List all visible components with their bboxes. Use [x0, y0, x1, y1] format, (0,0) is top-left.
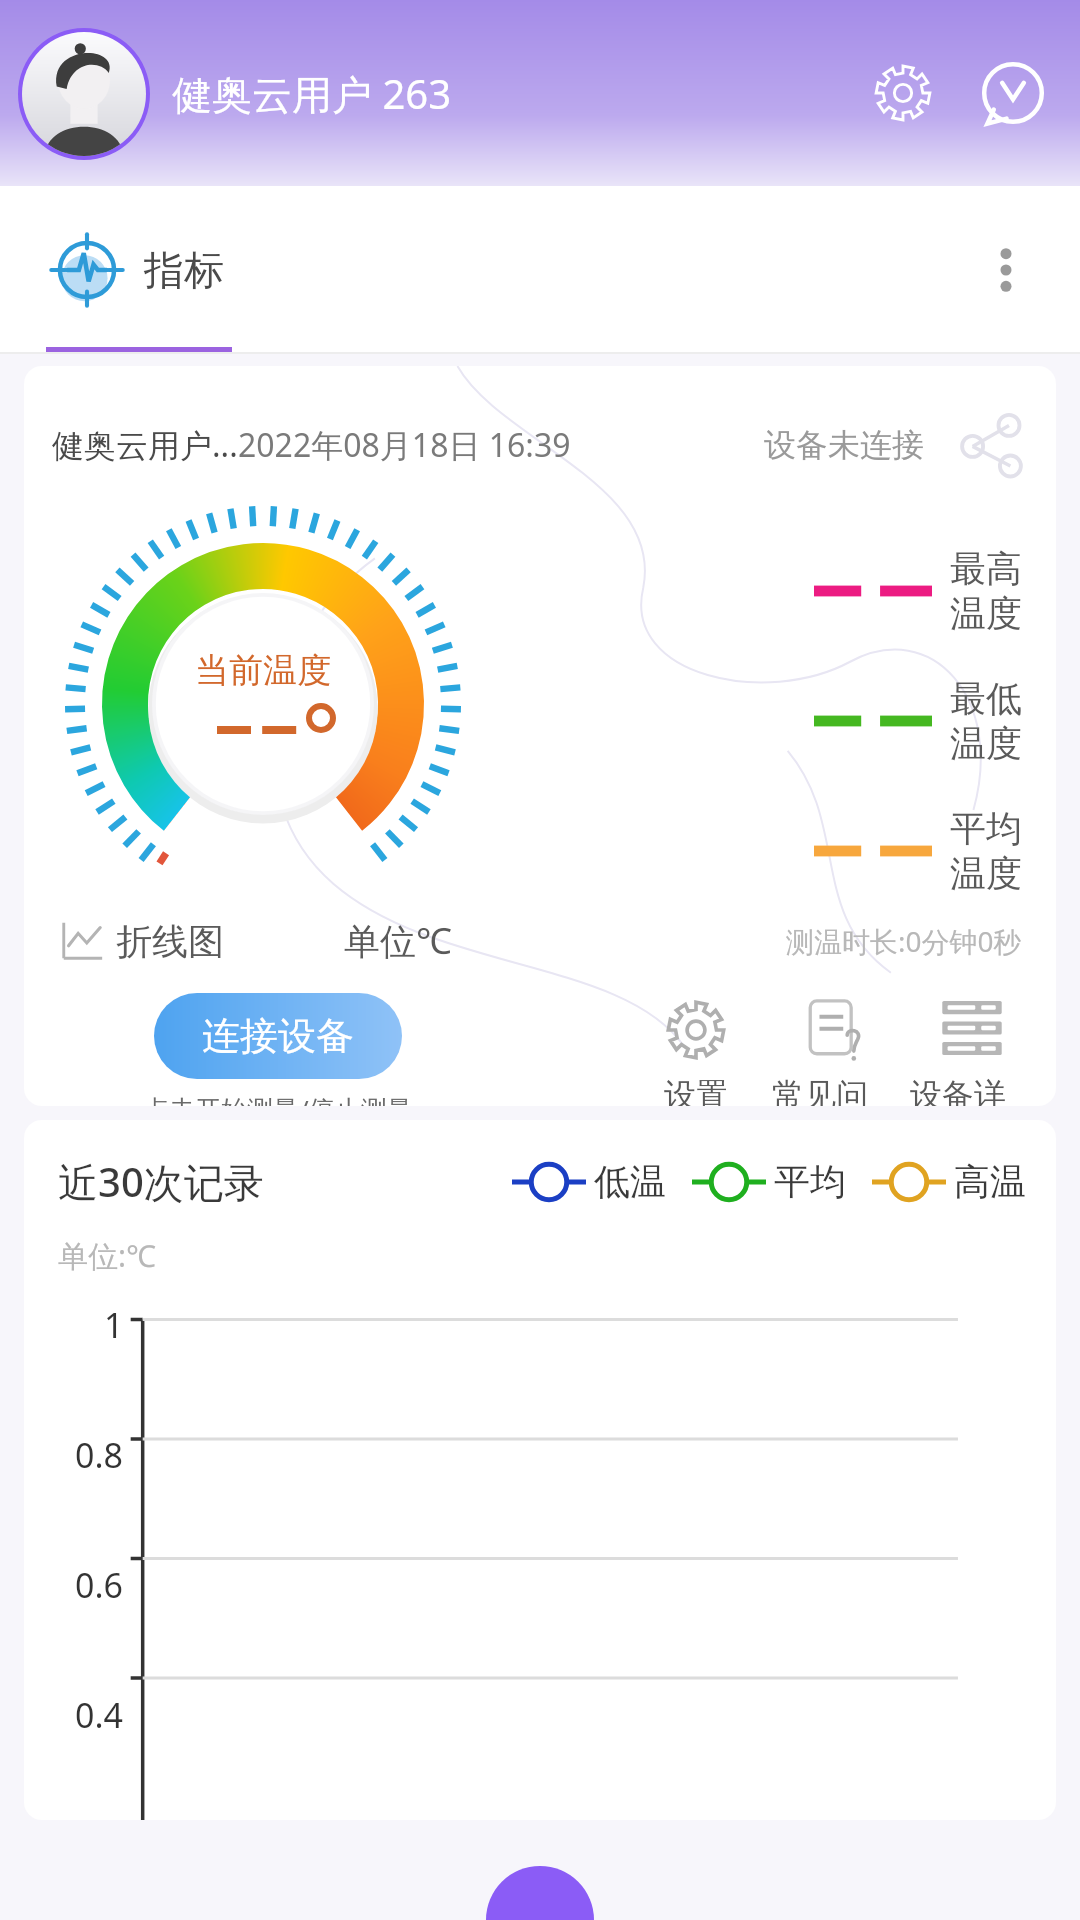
staticText: 健奥云用户...: [52, 423, 238, 467]
staticText: 点击开始测量/停止测量: [143, 1091, 413, 1106]
staticText: 健奥云用户 263: [172, 66, 452, 121]
staticText: 0.8: [75, 1432, 124, 1476]
staticText: 当前温度: [195, 649, 331, 692]
staticText: 设备详情: [910, 1075, 1034, 1106]
staticText: 高温: [954, 1159, 1026, 1204]
staticText: 温度: [950, 851, 1022, 896]
button[interactable]: 平均: [692, 1159, 846, 1204]
staticText: 单位℃: [344, 916, 452, 965]
staticText: 最高: [950, 546, 1022, 591]
staticText: 2022年08月18日 16:39: [238, 423, 571, 467]
button[interactable]: 折线图: [58, 917, 224, 965]
staticText: 1: [104, 1302, 124, 1346]
staticText: 低温: [594, 1159, 666, 1204]
staticText: 温度: [950, 591, 1022, 636]
staticText: 0.4: [75, 1692, 124, 1736]
staticText: 平均: [950, 806, 1022, 851]
staticText: 近30次记录: [58, 1154, 264, 1209]
staticText: 最低: [950, 676, 1022, 721]
button[interactable]: 设备详情: [910, 997, 1034, 1106]
button[interactable]: Share: [952, 402, 1038, 488]
staticText: 指标: [144, 245, 224, 295]
button[interactable]: 设置: [634, 997, 758, 1106]
staticText: 测温时长:0分钟0秒: [786, 922, 1022, 960]
staticText: 温度: [950, 721, 1022, 766]
button[interactable]: 低温: [512, 1159, 666, 1204]
button[interactable]: 高温: [872, 1159, 1026, 1204]
staticText: 单位:℃: [58, 1235, 156, 1276]
button[interactable]: 连接设备: [154, 993, 402, 1079]
button[interactable]: 指标: [46, 229, 224, 311]
button[interactable]: Messages: [970, 50, 1056, 136]
button[interactable]: Settings: [860, 50, 946, 136]
staticText: 平均: [774, 1159, 846, 1204]
button[interactable]: 常见问题: [772, 997, 896, 1106]
staticText: 设置: [664, 1075, 728, 1106]
staticText: 连接设备: [202, 1012, 354, 1060]
button[interactable]: [22, 32, 146, 156]
staticText: 0.6: [75, 1562, 124, 1606]
button[interactable]: Add record: [486, 1866, 594, 1920]
staticText: 折线图: [116, 919, 224, 964]
button[interactable]: More options: [966, 230, 1046, 310]
staticText: 常见问题: [772, 1075, 896, 1106]
staticText: 设备未连接: [764, 425, 924, 465]
